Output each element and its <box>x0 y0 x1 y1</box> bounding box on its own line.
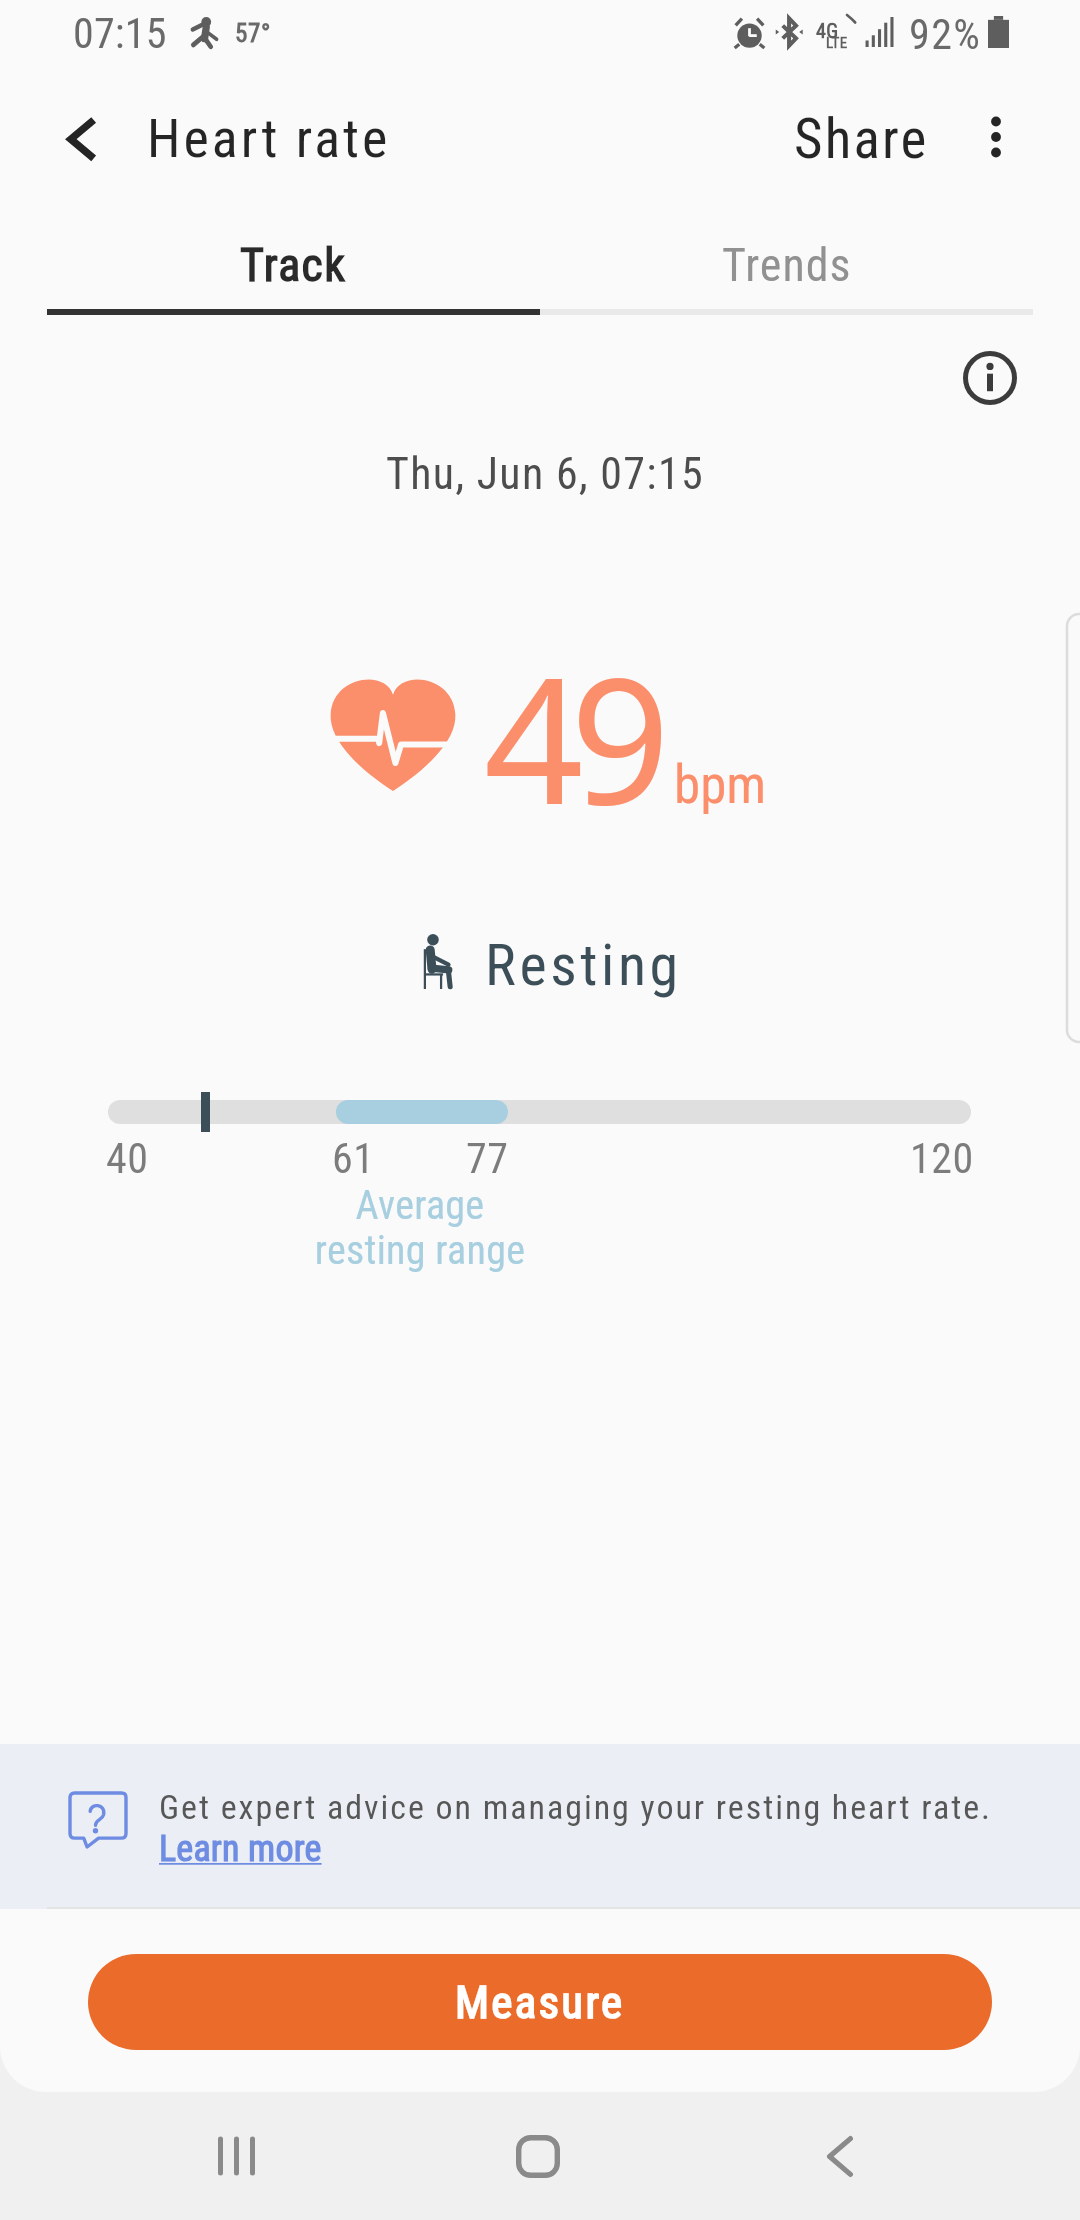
staticText: Measure <box>455 1976 625 2029</box>
staticText: 49 <box>484 618 658 855</box>
staticText: 120 <box>910 1134 974 1183</box>
staticText: Trends <box>722 238 852 292</box>
button[interactable]: Share <box>774 90 944 190</box>
staticText: Get expert advice on managing your resti… <box>159 1787 992 1827</box>
staticText: Share <box>794 107 929 171</box>
button[interactable]: Learn more <box>159 1828 322 1870</box>
staticText: 77 <box>466 1134 509 1183</box>
button[interactable]: Recent apps <box>178 2092 298 2220</box>
button[interactable]: Track <box>47 213 540 316</box>
staticText: LTE <box>826 34 848 52</box>
staticText: 57° <box>235 19 271 48</box>
button[interactable]: Home <box>478 2092 598 2220</box>
staticText: Track <box>240 238 347 292</box>
staticText: 07:15 <box>73 9 167 58</box>
staticText: Resting <box>485 931 682 999</box>
staticText: Thu, Jun 6, 07:15 <box>5 448 1080 500</box>
staticText: 4G <box>816 19 839 42</box>
staticText: 92% <box>909 10 982 59</box>
button[interactable]: Measure <box>88 1954 992 2050</box>
button[interactable]: More options <box>968 106 1024 168</box>
staticText: bpm <box>674 754 767 816</box>
staticText: Heart rate <box>147 107 391 170</box>
button[interactable]: Information <box>963 351 1017 405</box>
staticText: Average resting range <box>220 1182 620 1273</box>
staticText: 40 <box>106 1134 149 1183</box>
staticText: 61 <box>332 1134 375 1183</box>
button[interactable]: Trends <box>540 213 1033 316</box>
button[interactable]: Get expert advice on managing your resti… <box>0 1744 1080 1909</box>
button[interactable]: Back <box>780 2092 900 2220</box>
button[interactable]: Back <box>42 96 122 176</box>
